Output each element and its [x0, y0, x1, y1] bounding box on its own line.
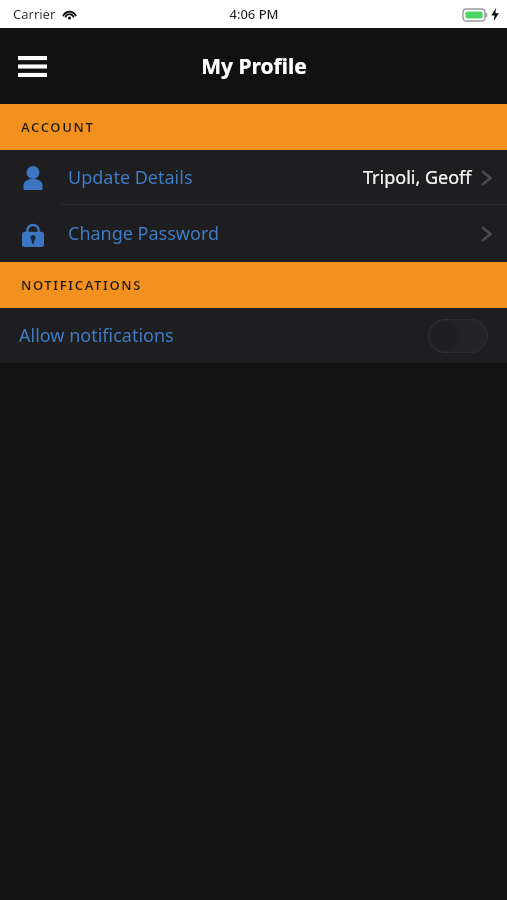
staticText: NOTIFICATIONS: [21, 276, 142, 294]
staticText: Tripoli, Geoff: [363, 165, 472, 190]
staticText: Update Details: [68, 165, 193, 190]
staticText: 4:06 PM: [229, 5, 279, 23]
button[interactable]: Update Details: [0, 150, 507, 205]
staticText: Carrier: [13, 5, 56, 23]
staticText: Change Password: [68, 221, 220, 246]
button[interactable]: Allow notifications toggle: [428, 319, 488, 353]
button[interactable]: Change Password: [0, 205, 507, 262]
staticText: My Profile: [201, 52, 307, 81]
button[interactable]: Open navigation menu: [10, 44, 54, 88]
staticText: Allow notifications: [19, 323, 174, 348]
button[interactable]: Allow notifications: [0, 308, 507, 363]
staticText: ACCOUNT: [21, 118, 95, 136]
